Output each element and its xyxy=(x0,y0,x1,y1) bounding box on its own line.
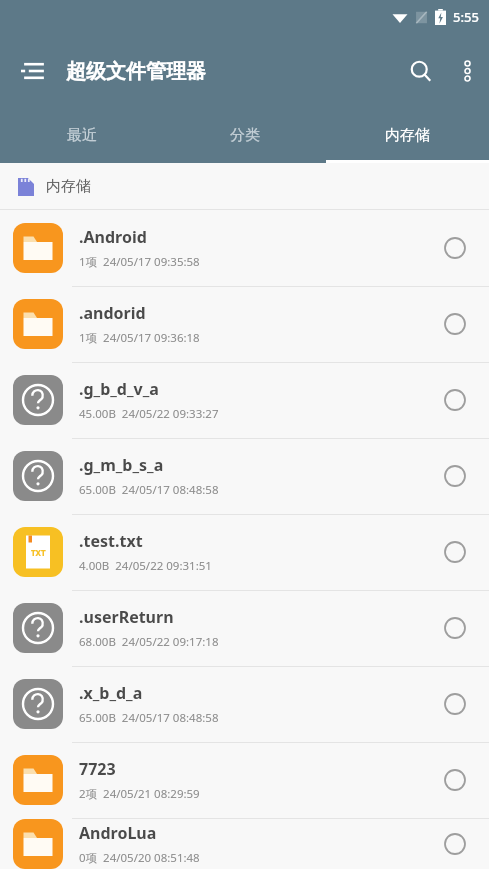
button[interactable]: .Android xyxy=(0,210,489,286)
button[interactable]: .x_b_d_a xyxy=(0,666,489,742)
button[interactable]: .andorid xyxy=(0,286,489,362)
button[interactable]: .g_m_b_s_a xyxy=(0,438,489,514)
button[interactable]: Select .test.txt xyxy=(433,530,477,574)
staticText: 65.00B 24/05/17 08:48:58 xyxy=(79,482,219,498)
staticText: TXT xyxy=(31,547,46,558)
staticText: .g_b_d_v_a xyxy=(79,378,159,400)
button[interactable]: Select .g_m_b_s_a xyxy=(433,454,477,498)
staticText: 内存储 xyxy=(385,126,430,145)
staticText: 5:55 xyxy=(453,8,479,26)
staticText: 分类 xyxy=(230,126,260,145)
button[interactable]: 最近 xyxy=(0,108,163,163)
button[interactable]: Select .x_b_d_a xyxy=(433,682,477,726)
button[interactable]: Select .Android xyxy=(433,226,477,270)
button[interactable]: TXT xyxy=(0,514,489,590)
button[interactable]: Select .andorid xyxy=(433,302,477,346)
staticText: 68.00B 24/05/22 09:17:18 xyxy=(79,634,219,650)
staticText: .g_m_b_s_a xyxy=(79,454,164,476)
staticText: 1项 24/05/17 09:35:58 xyxy=(79,254,200,270)
staticText: .andorid xyxy=(79,302,146,324)
staticText: 7723 xyxy=(79,758,116,780)
button[interactable]: 分类 xyxy=(163,108,326,163)
staticText: 1项 24/05/17 09:36:18 xyxy=(79,330,200,346)
staticText: .userReturn xyxy=(79,606,174,628)
staticText: 最近 xyxy=(67,126,97,145)
button[interactable]: .userReturn xyxy=(0,590,489,666)
button[interactable]: 内存储 xyxy=(326,108,489,163)
staticText: AndroLua xyxy=(79,822,157,844)
button[interactable]: Select 7723 xyxy=(433,758,477,802)
button[interactable]: 7723 xyxy=(0,742,489,818)
staticText: 4.00B 24/05/22 09:31:51 xyxy=(79,558,212,574)
button[interactable]: .g_b_d_v_a xyxy=(0,362,489,438)
button[interactable]: Search xyxy=(397,47,445,95)
staticText: 65.00B 24/05/17 08:48:58 xyxy=(79,710,219,726)
button[interactable]: Menu xyxy=(10,47,58,95)
button[interactable]: Select .userReturn xyxy=(433,606,477,650)
button[interactable]: 内存储 xyxy=(0,163,489,209)
staticText: 2项 24/05/21 08:29:59 xyxy=(79,786,200,802)
staticText: 内存储 xyxy=(46,177,91,196)
staticText: 0项 24/05/20 08:51:48 xyxy=(79,850,200,866)
button[interactable]: Select AndroLua xyxy=(433,822,477,866)
button[interactable]: More options xyxy=(445,49,489,93)
button[interactable]: Select .g_b_d_v_a xyxy=(433,378,477,422)
staticText: 超级文件管理器 xyxy=(66,59,206,84)
staticText: .Android xyxy=(79,226,147,248)
staticText: 45.00B 24/05/22 09:33:27 xyxy=(79,406,219,422)
staticText: .test.txt xyxy=(79,530,143,552)
button[interactable]: AndroLua xyxy=(0,818,489,869)
staticText: .x_b_d_a xyxy=(79,682,143,704)
